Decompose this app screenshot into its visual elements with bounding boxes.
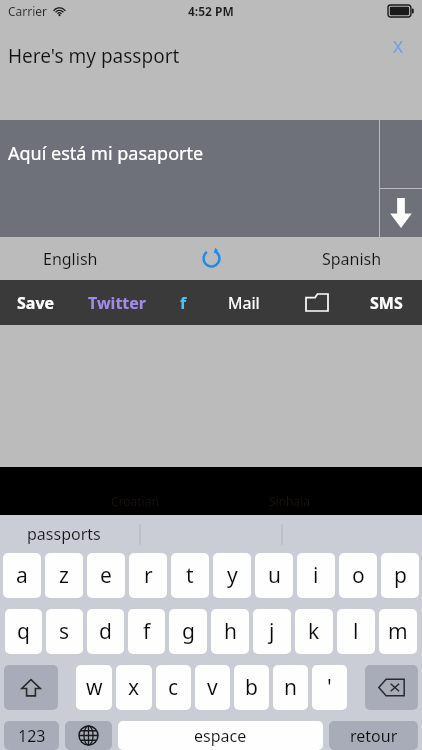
staticText: m <box>388 617 408 646</box>
button[interactable]: f <box>161 280 205 325</box>
button[interactable]: q <box>5 609 42 654</box>
staticText: 4:52 PM <box>188 3 234 19</box>
button[interactable]: f <box>128 609 165 654</box>
button[interactable]: retour <box>329 721 418 750</box>
button[interactable]: Twitter <box>72 280 161 325</box>
button[interactable]: s <box>46 609 83 654</box>
staticText: Mail <box>228 292 260 314</box>
staticText: t <box>186 561 194 590</box>
staticText: h <box>224 617 237 646</box>
button[interactable]: w <box>76 665 112 710</box>
staticText: Spanish <box>322 248 382 270</box>
button[interactable]: h <box>211 609 249 654</box>
staticText: Twitter <box>88 292 146 314</box>
button[interactable]: 123 <box>4 721 59 750</box>
staticText: f <box>143 617 151 646</box>
staticText: r <box>144 561 153 590</box>
staticText: w <box>86 673 103 702</box>
staticText: f <box>180 292 187 314</box>
button[interactable]: Aquí está mi pasaporte <box>0 120 379 237</box>
button[interactable]: Spanish <box>282 237 422 280</box>
staticText: X <box>393 35 403 58</box>
staticText: c <box>168 673 179 702</box>
staticText: retour <box>350 725 398 747</box>
staticText: e <box>100 561 112 590</box>
button[interactable]: p <box>381 553 419 598</box>
button[interactable]: Swap languages <box>189 237 233 280</box>
staticText: Sinhala <box>269 493 311 509</box>
button[interactable]: Backspace <box>365 665 418 710</box>
staticText: Aquí está mi pasaporte <box>8 141 204 166</box>
button[interactable]: Change keyboard <box>65 721 112 750</box>
staticText: p <box>394 561 407 590</box>
staticText: j <box>269 617 275 646</box>
button[interactable]: e <box>87 553 125 598</box>
button[interactable]: Save <box>0 280 72 325</box>
staticText: Croatian <box>111 493 159 509</box>
button[interactable]: i <box>297 553 335 598</box>
staticText: y <box>227 561 238 590</box>
button[interactable]: m <box>379 609 417 654</box>
staticText: passports <box>27 523 101 545</box>
staticText: Carrier <box>8 3 48 19</box>
staticText: b <box>245 673 258 702</box>
button[interactable]: x <box>116 665 152 710</box>
staticText: g <box>182 617 195 646</box>
button[interactable]: Files <box>283 280 351 325</box>
staticText: u <box>268 561 281 590</box>
staticText: x <box>128 673 140 702</box>
staticText: i <box>313 561 319 590</box>
button[interactable]: SMS <box>351 280 422 325</box>
staticText: o <box>352 561 365 590</box>
staticText: English <box>43 248 98 270</box>
button[interactable]: n <box>273 665 308 710</box>
button[interactable]: Close <box>382 30 414 62</box>
button[interactable]: u <box>255 553 293 598</box>
staticText: z <box>59 561 69 590</box>
button[interactable]: z <box>45 553 83 598</box>
button[interactable]: o <box>339 553 377 598</box>
staticText: k <box>308 617 320 646</box>
button[interactable]: v <box>195 665 230 710</box>
button[interactable]: Download <box>380 189 422 237</box>
button[interactable]: espace <box>118 721 323 750</box>
button[interactable]: English <box>0 237 140 280</box>
button[interactable]: t <box>171 553 209 598</box>
staticText: ' <box>327 673 332 702</box>
button[interactable]: b <box>234 665 269 710</box>
staticText: 123 <box>18 725 46 747</box>
button[interactable]: l <box>337 609 375 654</box>
staticText: a <box>16 561 28 590</box>
button[interactable]: d <box>87 609 124 654</box>
staticText: SMS <box>370 292 403 314</box>
button[interactable]: Shift <box>4 665 58 710</box>
staticText: q <box>17 617 30 646</box>
staticText: Save <box>17 292 55 314</box>
button[interactable]: Mail <box>205 280 283 325</box>
staticText: v <box>207 673 218 702</box>
button[interactable]: y <box>213 553 251 598</box>
staticText: Here's my passport <box>8 43 180 69</box>
button[interactable]: j <box>253 609 291 654</box>
button[interactable]: g <box>169 609 207 654</box>
staticText: espace <box>194 725 247 747</box>
staticText: n <box>284 673 297 702</box>
button[interactable]: r <box>129 553 167 598</box>
button[interactable]: c <box>156 665 191 710</box>
button[interactable]: a <box>3 553 41 598</box>
staticText: s <box>59 617 70 646</box>
button[interactable]: ' <box>312 665 347 710</box>
staticText: d <box>99 617 112 646</box>
staticText: l <box>353 617 359 646</box>
button[interactable]: k <box>295 609 333 654</box>
